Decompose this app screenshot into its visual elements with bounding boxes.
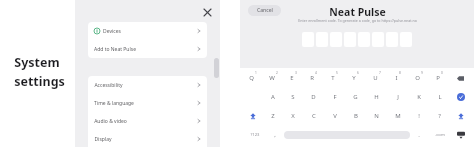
button[interactable]: B [345,108,366,124]
button[interactable]: P [429,70,450,86]
staticText: Devices [103,28,121,35]
staticText: Q [249,74,254,82]
staticText: 3 [295,71,297,75]
staticText: W [269,74,275,82]
staticText: settings [14,73,65,90]
staticText: Add to Neat Pulse [94,46,136,53]
button[interactable]: Time & language [88,94,207,112]
staticText: 5 [336,71,338,75]
staticText: Y [352,74,356,82]
button[interactable]: I [387,70,408,86]
button[interactable]: ! [408,108,429,124]
button[interactable]: C [303,108,324,124]
staticText: Accessibility [94,82,123,89]
button[interactable]: H [366,89,387,105]
button[interactable]: Shift [243,108,263,124]
staticText: 2 [276,71,278,75]
button[interactable]: Display [88,130,207,147]
button[interactable]: ?123 [244,127,266,143]
button[interactable]: K [408,89,429,105]
staticText: ! [418,112,420,120]
staticText: Audio & video [94,118,127,125]
staticText: Neat Pulse [329,5,386,19]
button[interactable]: Backspace [450,70,471,86]
button[interactable]: Add to Neat Pulse [88,40,207,58]
button[interactable]: Accessibility [88,76,207,94]
staticText: Enter enrollment code. To generate a cod… [298,18,417,23]
button[interactable]: , [266,127,284,143]
staticText: , [274,131,276,139]
button[interactable]: A [263,89,283,105]
button[interactable]: Devices [88,22,207,40]
staticText: 6 [357,71,359,75]
staticText: C [312,112,316,120]
staticText: S [291,93,295,101]
button[interactable]: T [324,70,345,86]
staticText: ?123 [250,132,260,138]
staticText: T [331,74,335,82]
button[interactable]: D [303,89,324,105]
staticText: U [373,74,378,82]
button[interactable]: R [303,70,324,86]
button[interactable]: S [283,89,303,105]
staticText: . [418,131,420,139]
button[interactable]: O [408,70,429,86]
button[interactable]: M [387,108,408,124]
button[interactable]: Hide keyboard [452,127,470,143]
staticText: P [436,74,440,82]
button[interactable]: Close [201,6,214,19]
staticText: R [310,74,314,82]
button[interactable]: N [366,108,387,124]
staticText: I [395,74,398,82]
staticText: System [14,54,60,71]
staticText: D [311,93,316,101]
staticText: 9 [421,71,423,75]
staticText: J [397,93,399,101]
button[interactable]: Cancel [248,5,281,16]
button[interactable]: X [283,108,303,124]
button[interactable]: ? [429,108,450,124]
button[interactable]: V [324,108,345,124]
button[interactable]: Shift [450,108,471,124]
staticText: 4 [315,71,317,75]
staticText: M [395,112,401,120]
staticText: Display [94,136,112,143]
button[interactable]: E [283,70,303,86]
button[interactable]: Z [263,108,283,124]
staticText: N [374,112,379,120]
button[interactable]: U [366,70,387,86]
staticText: F [333,93,337,101]
staticText: 8 [399,71,401,75]
button[interactable]: L [429,89,450,105]
staticText: Cancel [257,7,273,14]
staticText: V [333,112,337,120]
button[interactable]: .com [428,127,452,143]
button[interactable]: F [324,89,345,105]
button[interactable]: J [387,89,408,105]
button[interactable]: W [263,70,283,86]
staticText: 1 [255,71,257,75]
staticText: L [438,93,442,101]
button[interactable]: G [345,89,366,105]
staticText: B [354,112,358,120]
button[interactable]: Y [345,70,366,86]
button[interactable]: Enter [450,89,471,105]
staticText: K [417,93,421,101]
button[interactable]: Audio & video [88,112,207,130]
button[interactable]: Q [243,70,263,86]
staticText: H [374,93,379,101]
staticText: 7 [379,71,381,75]
staticText: ? [438,112,441,120]
staticText: Time & language [94,100,134,107]
